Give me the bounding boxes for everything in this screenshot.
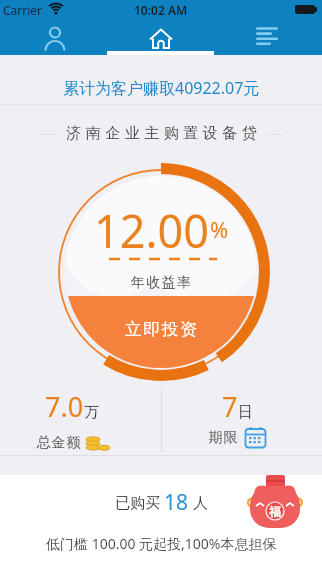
staticText: 人	[189, 492, 208, 512]
staticText: 总金额	[36, 434, 81, 452]
button[interactable]: 总金额	[15, 433, 133, 452]
button[interactable]	[28, 21, 82, 55]
staticText: 10:02 AM	[134, 2, 188, 18]
staticText: 低门槛 100.00 元起投,100%本息担保	[46, 534, 277, 553]
staticText: 18	[164, 488, 189, 517]
staticText: 期限	[208, 429, 238, 447]
staticText: 7	[222, 388, 238, 425]
staticText: 年收益率	[130, 274, 192, 292]
button[interactable]	[240, 21, 294, 55]
staticText: 济南企业主购置设备贷	[64, 124, 259, 143]
staticText: 7.0	[45, 388, 84, 425]
staticText: 万	[84, 403, 99, 422]
button[interactable]: 立即投资	[111, 317, 211, 341]
staticText: Carrier	[3, 2, 43, 18]
staticText: 福	[269, 504, 281, 519]
button[interactable]	[134, 21, 188, 55]
staticText: 12.00	[94, 200, 210, 248]
staticText: 日	[238, 403, 253, 422]
staticText: 立即投资	[124, 319, 198, 340]
staticText: 已购买	[115, 492, 164, 512]
staticText: %	[210, 214, 229, 244]
button[interactable]: 期限	[178, 427, 296, 448]
button[interactable]: 累计为客户赚取40922.07元	[0, 77, 322, 99]
staticText: 累计为客户赚取40922.07元	[63, 77, 260, 99]
button[interactable]: 福	[245, 472, 305, 532]
